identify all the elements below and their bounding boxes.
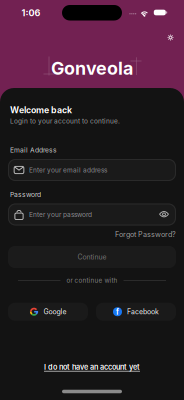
staticText: Forgot Password?: [115, 230, 176, 239]
staticText: Facebook: [127, 308, 159, 316]
staticText: I do not have an account yet: [44, 363, 140, 371]
staticText: or continue with: [66, 277, 117, 284]
staticText: Welcome back: [10, 105, 72, 115]
button[interactable]: Show password: [159, 210, 169, 218]
staticText: 1:06: [21, 7, 40, 18]
button[interactable]: I do not have an account yet: [44, 363, 140, 371]
staticText: Enter your email address: [29, 166, 107, 174]
button[interactable]: f: [96, 303, 176, 321]
staticText: Gonveola: [51, 57, 133, 79]
staticText: Google: [43, 308, 66, 316]
staticText: Login to your account to continue.: [10, 117, 120, 125]
button[interactable]: Password: [8, 203, 176, 225]
staticText: Password: [10, 190, 41, 199]
staticText: f: [116, 308, 119, 317]
button[interactable]: Continue: [8, 246, 176, 268]
button[interactable]: Email address: [8, 159, 176, 181]
button[interactable]: Switch to light mode: [163, 30, 177, 44]
staticText: Email Address: [10, 146, 57, 154]
button[interactable]: Forgot Password?: [115, 230, 176, 239]
button[interactable]: Google: [8, 303, 88, 321]
staticText: Continue: [77, 253, 106, 261]
staticText: Enter your password: [29, 210, 92, 218]
